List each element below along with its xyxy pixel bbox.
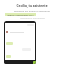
staticText: Pregunta lo que quieras — [20, 17, 45, 20]
staticText: gratis y disponible 24/7 — [7, 13, 34, 16]
button[interactable]: Send — [4, 21, 36, 64]
staticText: Cecilia, tu asistente — [16, 4, 48, 8]
button[interactable]: Send — [33, 61, 36, 64]
staticText: Resuelve tus dudas al momento — [14, 9, 50, 12]
